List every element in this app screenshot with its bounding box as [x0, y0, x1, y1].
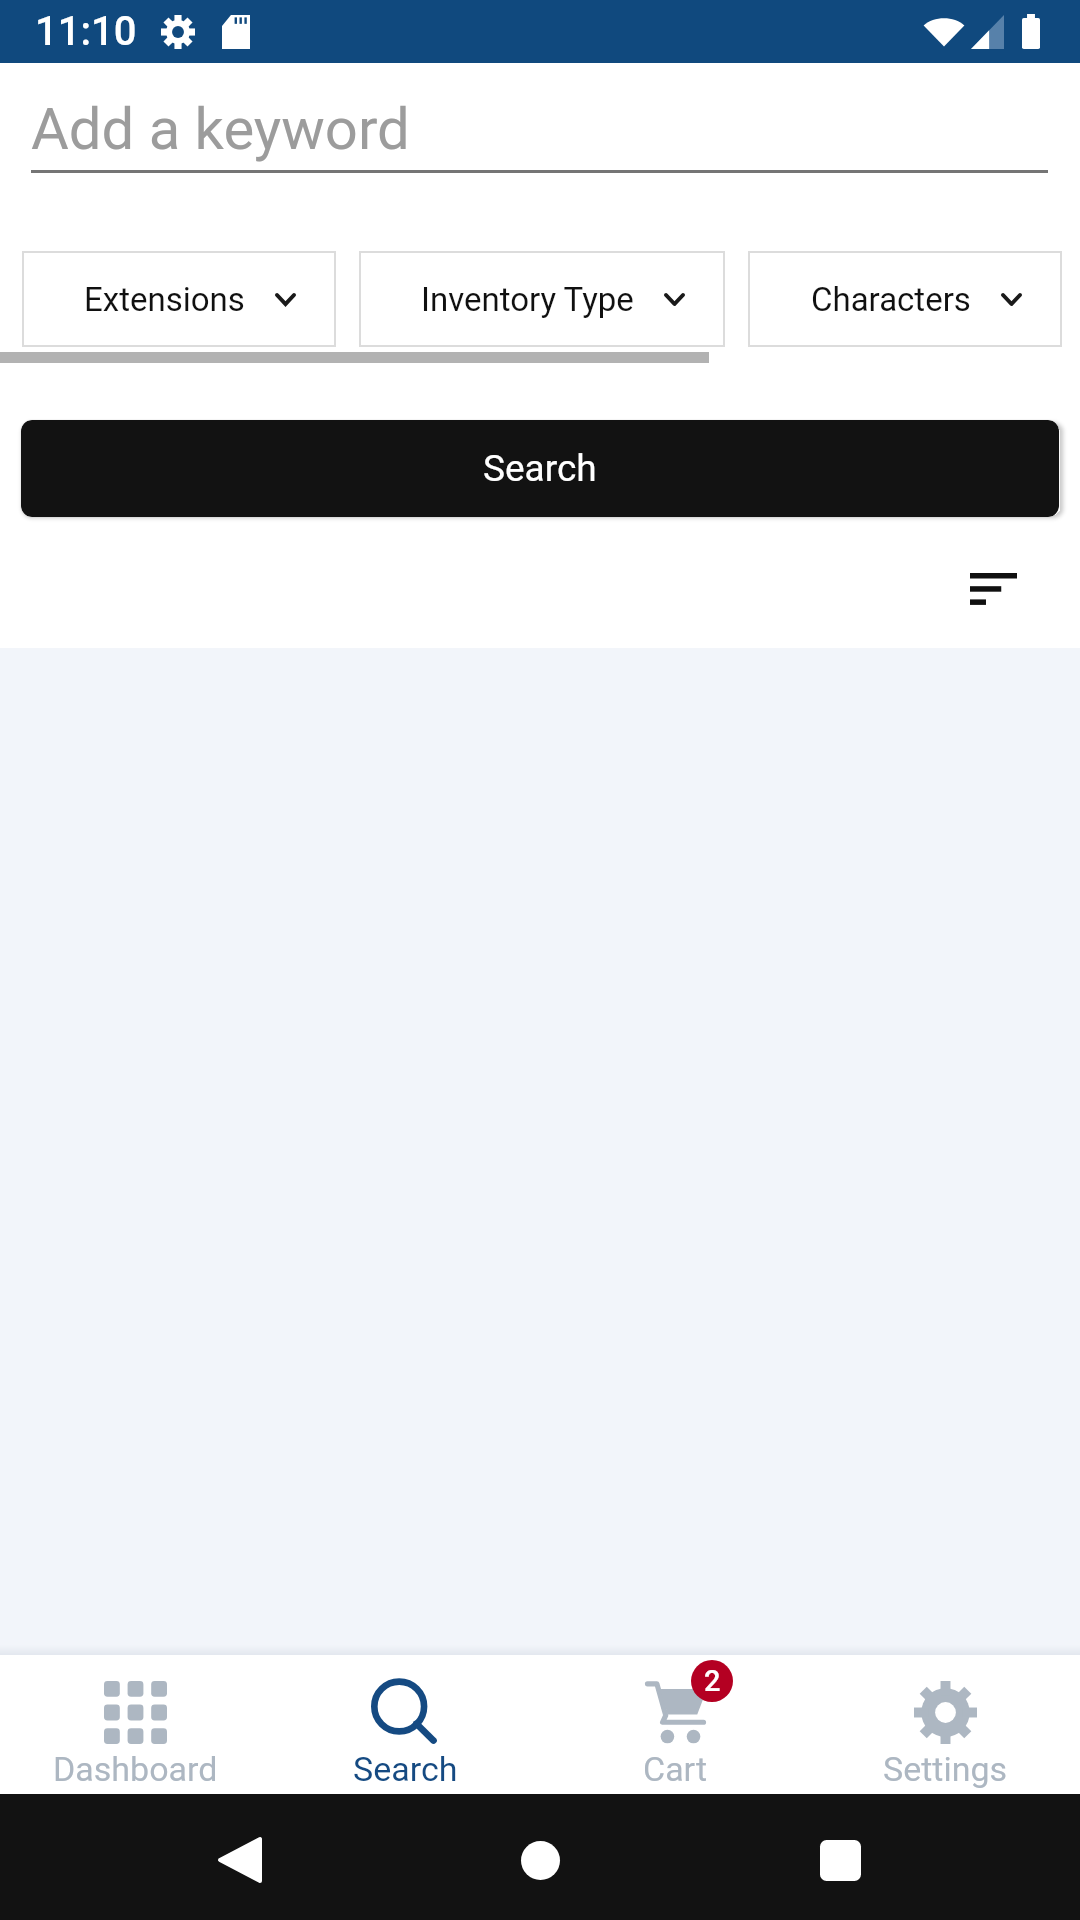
staticText: 11:10: [35, 8, 137, 55]
button[interactable]: Settings: [810, 1655, 1080, 1794]
button[interactable]: Home: [485, 1805, 595, 1915]
staticText: Cart: [643, 1749, 708, 1789]
button[interactable]: Dashboard: [0, 1655, 270, 1794]
staticText: Settings: [883, 1749, 1008, 1789]
staticText: 2: [704, 1664, 721, 1698]
staticText: Dashboard: [53, 1749, 218, 1789]
staticText: Add a keyword: [31, 95, 410, 163]
button[interactable]: 2: [540, 1655, 810, 1794]
button[interactable]: Search: [270, 1655, 540, 1794]
button[interactable]: Recents: [785, 1805, 895, 1915]
button[interactable]: Inventory Type: [359, 251, 725, 347]
button[interactable]: Add a keyword: [31, 63, 1048, 173]
button[interactable]: Characters: [748, 251, 1062, 347]
staticText: Extensions: [84, 280, 245, 319]
button[interactable]: Extensions: [22, 251, 336, 347]
staticText: Inventory Type: [421, 280, 634, 319]
button[interactable]: Sort: [946, 569, 1041, 641]
staticText: Search: [483, 447, 597, 490]
staticText: Search: [353, 1749, 458, 1789]
button[interactable]: Back: [185, 1805, 295, 1915]
staticText: Characters: [811, 280, 971, 319]
button[interactable]: Search: [21, 420, 1059, 517]
